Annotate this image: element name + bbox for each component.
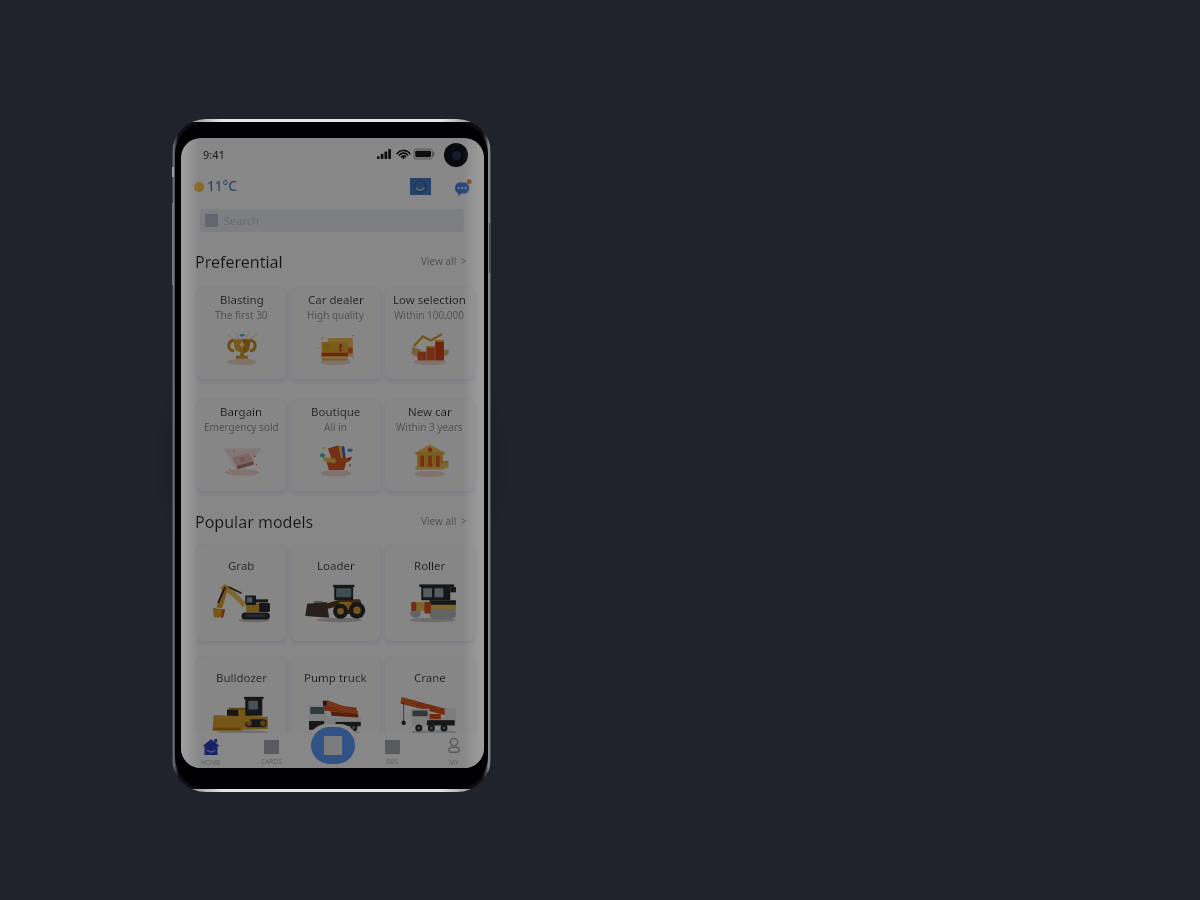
staticText: The first 30 bbox=[215, 308, 268, 322]
staticText: 9:41 bbox=[203, 147, 225, 162]
staticText: CARDS bbox=[261, 757, 282, 766]
button[interactable]: New car bbox=[385, 400, 474, 491]
staticText: Emergency sold bbox=[204, 420, 279, 434]
staticText: Car dealer bbox=[308, 292, 364, 308]
staticText: Pump truck bbox=[304, 670, 367, 686]
staticText: Bargain bbox=[220, 404, 263, 420]
staticText: Within 100,000 bbox=[394, 308, 465, 322]
staticText: Preferential bbox=[195, 251, 283, 273]
button[interactable]: Blasting bbox=[197, 288, 286, 379]
staticText: Within 3 years bbox=[396, 420, 463, 434]
button[interactable]: Search bbox=[200, 209, 464, 232]
button[interactable]: Crane bbox=[385, 657, 474, 753]
staticText: View all bbox=[421, 514, 457, 528]
button[interactable]: Messages bbox=[455, 179, 472, 196]
button[interactable]: Roller bbox=[385, 545, 474, 641]
staticText: Loader bbox=[317, 558, 355, 574]
staticText: Popular models bbox=[195, 511, 314, 533]
staticText: All in bbox=[324, 420, 347, 434]
button[interactable]: BBS bbox=[362, 733, 423, 768]
staticText: Low selection bbox=[393, 292, 466, 308]
staticText: Grab bbox=[228, 558, 255, 574]
staticText: Crane bbox=[414, 670, 446, 686]
staticText: Bulldozer bbox=[216, 670, 268, 686]
staticText: High quality bbox=[307, 308, 364, 322]
button[interactable]: Boutique bbox=[291, 400, 380, 491]
staticText: HOME bbox=[201, 758, 221, 767]
button[interactable]: Grab bbox=[197, 545, 286, 641]
button[interactable]: Bulldozer bbox=[197, 657, 286, 753]
button[interactable]: Scan code bbox=[410, 178, 431, 195]
button[interactable]: Pump truck bbox=[291, 657, 380, 753]
staticText: Blasting bbox=[220, 292, 264, 308]
button[interactable]: Bargain bbox=[197, 400, 286, 491]
button[interactable]: HOME bbox=[181, 733, 241, 768]
button[interactable]: Loader bbox=[291, 545, 380, 641]
staticText: 11°C bbox=[207, 177, 237, 195]
staticText: New car bbox=[408, 404, 452, 420]
staticText: Roller bbox=[414, 558, 446, 574]
staticText: View all bbox=[421, 254, 457, 268]
staticText: > bbox=[461, 514, 467, 528]
staticText: MY bbox=[449, 758, 459, 767]
button[interactable]: CARDS bbox=[241, 733, 301, 768]
staticText: Search bbox=[224, 213, 259, 228]
button[interactable]: View all bbox=[421, 514, 467, 528]
button[interactable]: View all bbox=[421, 254, 467, 268]
button[interactable]: MY bbox=[423, 733, 484, 768]
staticText: Boutique bbox=[311, 404, 361, 420]
staticText: BBS bbox=[386, 757, 399, 766]
button[interactable]: Low selection bbox=[385, 288, 474, 379]
staticText: > bbox=[461, 254, 467, 268]
button[interactable]: Publish bbox=[311, 727, 355, 764]
button[interactable]: Car dealer bbox=[291, 288, 380, 379]
